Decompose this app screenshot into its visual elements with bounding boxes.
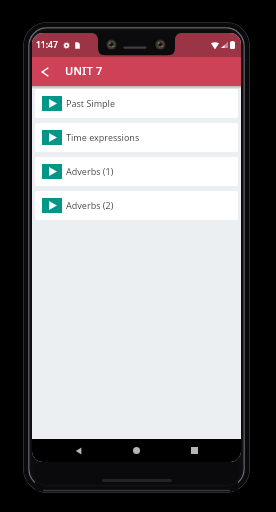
button[interactable]: Adverbs (1) [35,157,238,186]
button[interactable]: Back [32,59,57,84]
staticText: Time expressions [66,131,140,143]
button[interactable]: Back [67,439,90,462]
button[interactable]: Adverbs (2) [35,191,238,220]
staticText: UNIT 7 [65,63,103,78]
staticText: 11:47 [36,39,58,51]
staticText: Adverbs (1) [66,165,114,177]
button[interactable]: Recents [183,439,206,462]
button[interactable]: Time expressions [35,123,238,152]
button[interactable]: Past Simple [35,89,238,118]
staticText: Adverbs (2) [66,199,114,211]
button[interactable]: Home [125,439,148,462]
staticText: Past Simple [66,97,116,109]
